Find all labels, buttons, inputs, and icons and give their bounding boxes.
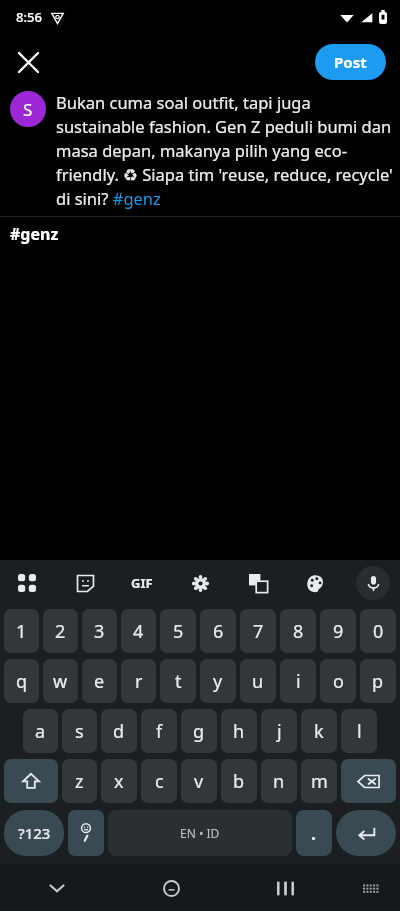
staticText: 1: [16, 619, 27, 644]
button[interactable]: c: [141, 759, 177, 803]
button[interactable]: u: [240, 659, 276, 703]
staticText: i: [296, 669, 301, 694]
button[interactable]: Home: [150, 867, 192, 909]
button[interactable]: i: [280, 659, 316, 703]
staticText: m: [311, 769, 328, 794]
staticText: q: [16, 669, 28, 694]
staticText: j: [277, 719, 282, 744]
staticText: 8:56: [16, 8, 42, 26]
button[interactable]: s: [62, 709, 97, 753]
staticText: h: [233, 719, 245, 744]
button[interactable]: 0: [360, 609, 396, 653]
button[interactable]: m: [301, 759, 337, 803]
button[interactable]: EN • ID: [108, 810, 292, 856]
button[interactable]: GIF: [125, 566, 159, 600]
button[interactable]: #genz: [0, 217, 400, 251]
button[interactable]: j: [261, 709, 297, 753]
staticText: d: [113, 719, 125, 744]
staticText: x: [114, 769, 124, 794]
staticText: 3: [94, 619, 105, 644]
staticText: 4: [133, 619, 144, 644]
button[interactable]: Post: [315, 44, 386, 80]
button[interactable]: 1: [4, 609, 39, 653]
staticText: 7: [253, 619, 264, 644]
button[interactable]: q: [4, 659, 39, 703]
button[interactable]: l: [341, 709, 377, 753]
button[interactable]: 7: [240, 609, 276, 653]
button[interactable]: Voice input: [356, 566, 390, 600]
button[interactable]: 5: [160, 609, 196, 653]
button[interactable]: 9: [320, 609, 356, 653]
button[interactable]: k: [301, 709, 337, 753]
staticText: s: [75, 719, 84, 744]
staticText: g: [193, 719, 205, 744]
staticText: y: [213, 669, 223, 694]
button[interactable]: f: [141, 709, 177, 753]
staticText: b: [233, 769, 245, 794]
button[interactable]: Shift: [4, 759, 58, 803]
button[interactable]: Emoji: [68, 810, 104, 856]
button[interactable]: d: [101, 709, 137, 753]
button[interactable]: Stickers: [68, 566, 102, 600]
button[interactable]: b: [221, 759, 257, 803]
staticText: c: [155, 769, 164, 794]
staticText: p: [372, 669, 384, 694]
staticText: .: [311, 821, 317, 846]
staticText: 9: [333, 619, 344, 644]
button[interactable]: e: [82, 659, 117, 703]
staticText: n: [273, 769, 285, 794]
staticText: u: [252, 669, 264, 694]
button[interactable]: 3: [82, 609, 117, 653]
staticText: S: [23, 98, 33, 121]
button[interactable]: Recents: [264, 867, 306, 909]
staticText: Bukan cuma soal outfit, tapi juga sustai…: [56, 91, 396, 210]
button[interactable]: Backspace: [341, 759, 396, 803]
button[interactable]: a: [23, 709, 58, 753]
button[interactable]: 6: [200, 609, 236, 653]
button[interactable]: Settings: [183, 566, 217, 600]
staticText: EN • ID: [180, 825, 220, 841]
button[interactable]: h: [221, 709, 257, 753]
button[interactable]: w: [43, 659, 78, 703]
staticText: 8: [293, 619, 304, 644]
button[interactable]: n: [261, 759, 297, 803]
button[interactable]: Close: [6, 40, 50, 84]
staticText: #genz: [10, 223, 59, 245]
staticText: w: [53, 669, 68, 694]
button[interactable]: Translate: [241, 566, 275, 600]
button[interactable]: Back: [36, 867, 78, 909]
staticText: 2: [55, 619, 66, 644]
staticText: k: [314, 719, 324, 744]
button[interactable]: z: [62, 759, 97, 803]
staticText: z: [75, 769, 84, 794]
button[interactable]: S: [10, 91, 46, 127]
button[interactable]: 8: [280, 609, 316, 653]
button[interactable]: Themes: [298, 566, 332, 600]
button[interactable]: .: [296, 810, 332, 856]
staticText: GIF: [131, 574, 153, 592]
button[interactable]: Apps: [10, 566, 44, 600]
button[interactable]: 4: [121, 609, 156, 653]
staticText: 0: [373, 619, 384, 644]
staticText: o: [333, 669, 344, 694]
button[interactable]: r: [121, 659, 156, 703]
button[interactable]: x: [101, 759, 137, 803]
button[interactable]: 2: [43, 609, 78, 653]
staticText: ?123: [18, 823, 51, 843]
button[interactable]: t: [160, 659, 196, 703]
staticText: Post: [334, 52, 367, 72]
button[interactable]: y: [200, 659, 236, 703]
button[interactable]: Enter: [336, 810, 396, 856]
button[interactable]: o: [320, 659, 356, 703]
staticText: t: [175, 669, 182, 694]
staticText: a: [35, 719, 46, 744]
staticText: v: [194, 769, 204, 794]
staticText: f: [156, 719, 163, 744]
button[interactable]: g: [181, 709, 217, 753]
button[interactable]: p: [360, 659, 396, 703]
staticText: r: [135, 669, 143, 694]
button[interactable]: Hide keyboard: [353, 870, 389, 906]
button[interactable]: v: [181, 759, 217, 803]
staticText: l: [357, 719, 362, 744]
button[interactable]: ?123: [4, 810, 64, 856]
